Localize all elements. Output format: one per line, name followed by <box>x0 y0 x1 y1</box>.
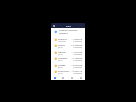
staticText: - 4 150.00 <box>71 56 82 59</box>
staticText: Completed <box>73 53 82 55</box>
button[interactable]: Cards <box>59 77 67 79</box>
staticText: Jul 22 <box>58 53 63 55</box>
staticText: Completed <box>73 40 82 42</box>
button[interactable]: More <box>76 77 85 79</box>
staticText: Completed <box>73 66 82 68</box>
button[interactable]: Salary <box>51 42 85 49</box>
button[interactable]: Stats <box>67 77 76 79</box>
staticText: Jul 19 <box>58 72 63 74</box>
staticText: Savings account balance <box>59 28 82 34</box>
staticText: Completed <box>73 72 82 74</box>
staticText: Coffee <box>58 63 66 66</box>
staticText: Completed <box>73 46 82 48</box>
button[interactable]: Grocery <box>51 36 85 43</box>
staticText: Jul 25 <box>58 46 63 48</box>
staticText: Jul 21 <box>58 59 63 61</box>
button[interactable]: Savings account balance <box>51 28 85 35</box>
staticText: - 1 012.99 <box>71 50 82 53</box>
staticText: Pharmacy <box>58 69 70 72</box>
button[interactable]: Home <box>51 77 59 79</box>
staticText: - 2 004.20 <box>71 63 82 66</box>
button[interactable]: Netflix <box>51 49 85 56</box>
staticText: Completed <box>73 59 82 61</box>
staticText: - 3 022.10 <box>71 69 82 72</box>
staticText: + 2 400.00 <box>70 43 82 46</box>
staticText: Grocery <box>58 37 67 40</box>
staticText: 10:24 am <box>58 40 66 42</box>
staticText: Jul 20 <box>58 66 63 68</box>
staticText: Bank <box>66 25 71 28</box>
staticText: Salary <box>58 43 65 46</box>
button[interactable]: Pharmacy <box>51 68 85 75</box>
staticText: Transfer <box>58 56 68 59</box>
staticText: - 1 038.50 <box>71 37 82 40</box>
staticText: Netflix <box>58 50 66 53</box>
button[interactable]: Coffee <box>51 62 85 69</box>
button[interactable]: Transfer <box>51 55 85 62</box>
